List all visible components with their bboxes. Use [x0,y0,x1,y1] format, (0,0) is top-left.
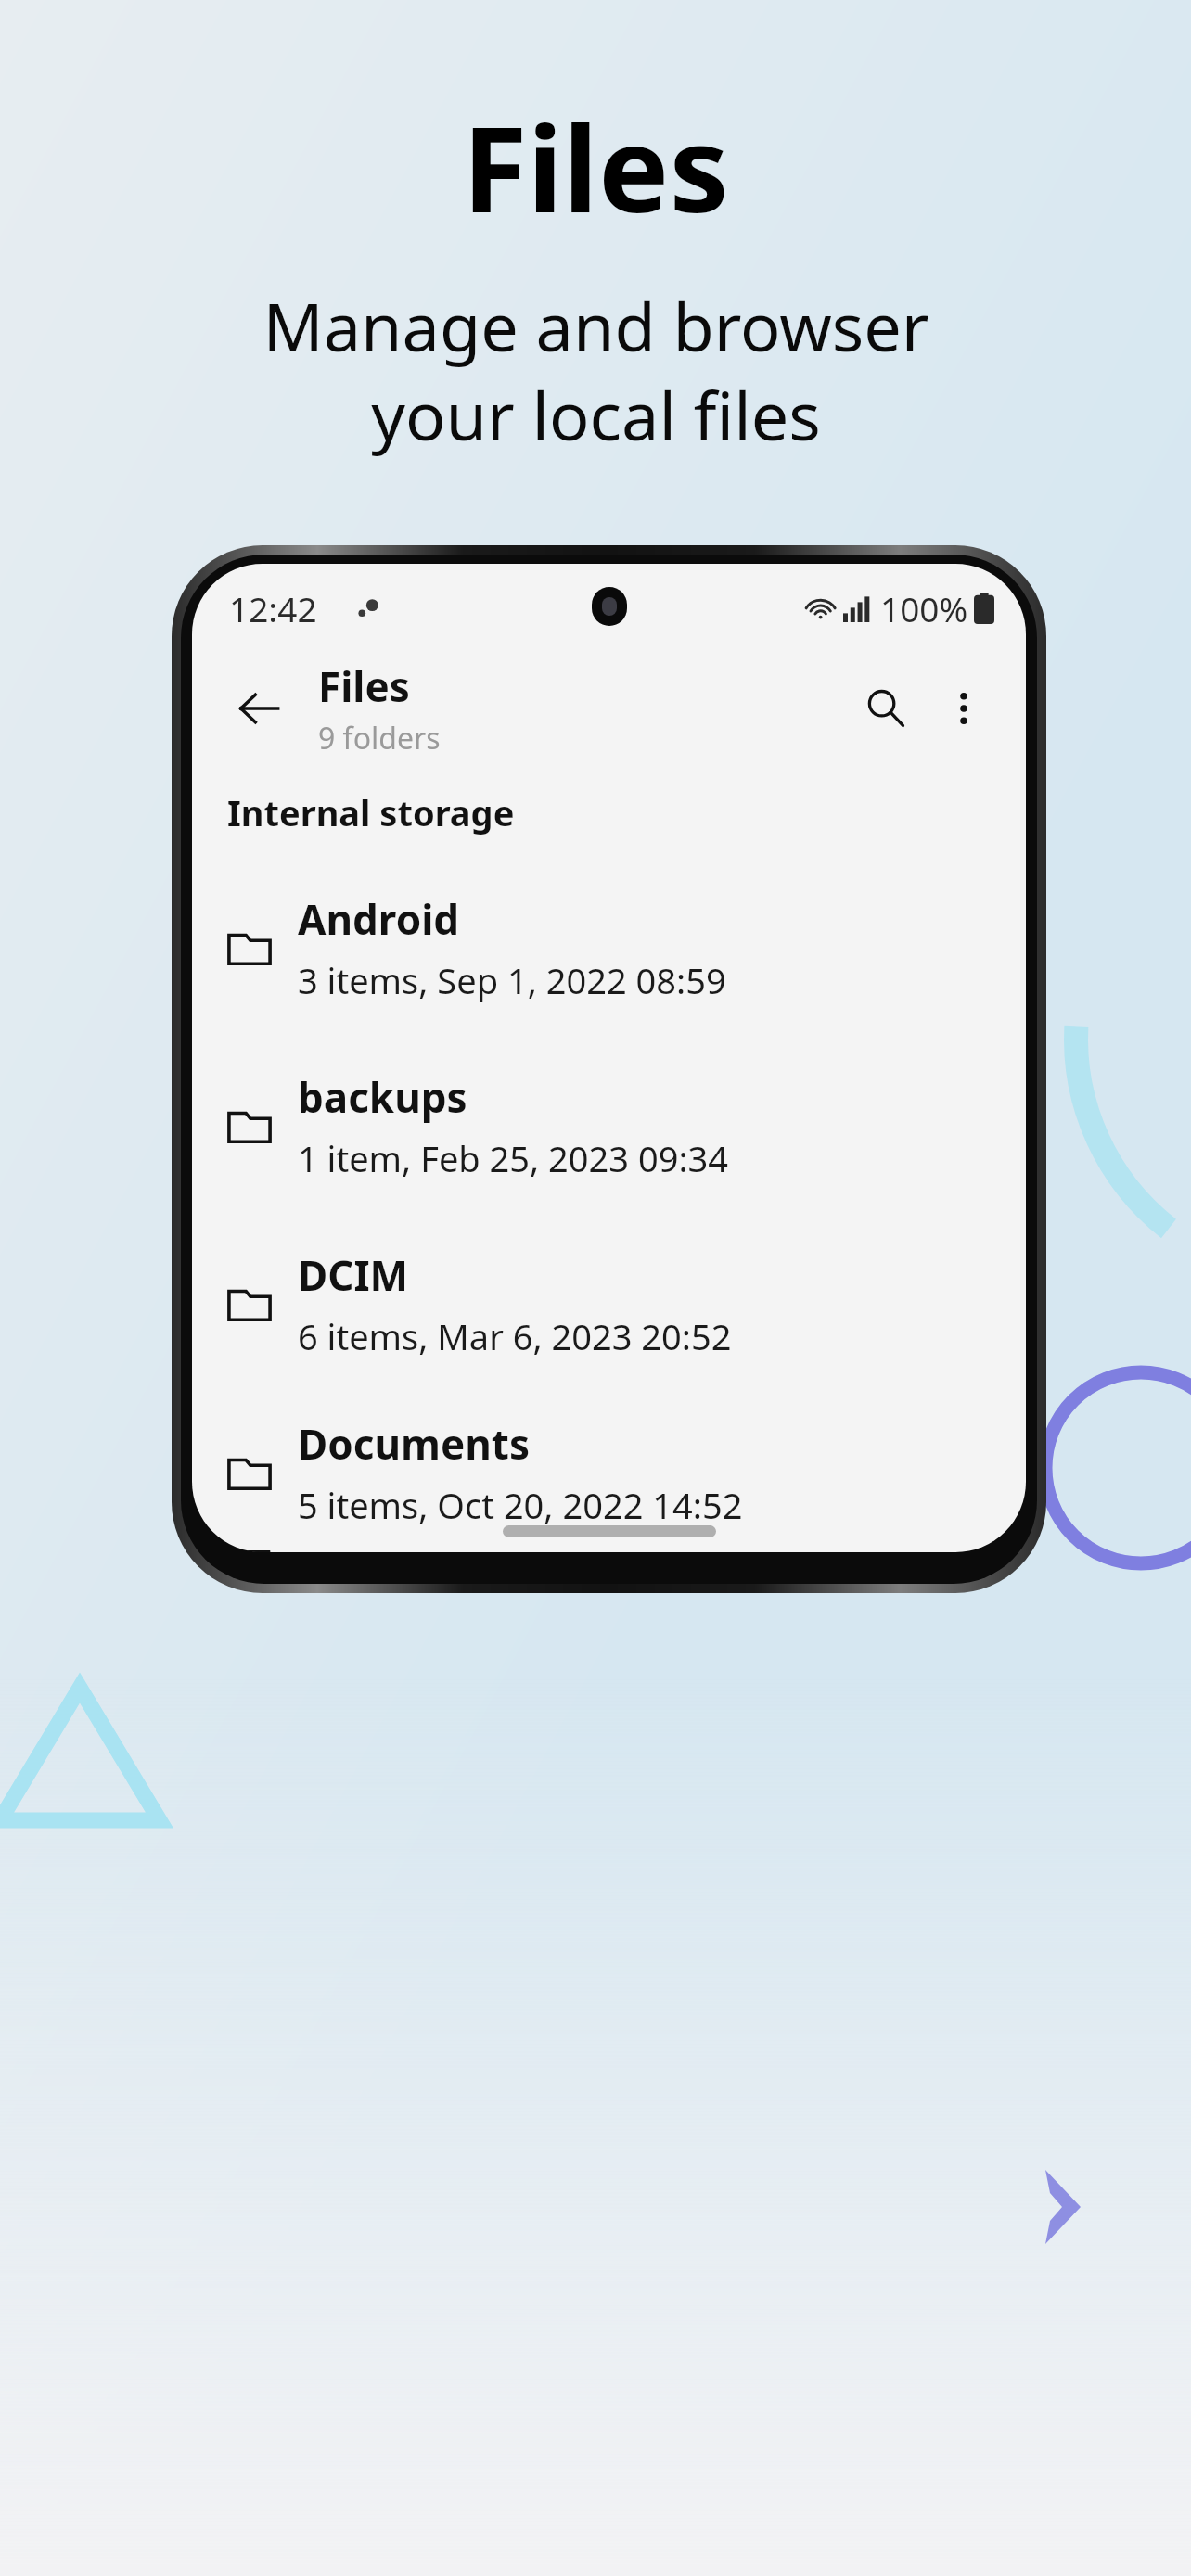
staticText: 12:42 [229,585,317,631]
staticText: DCIM [298,1247,409,1303]
staticText: 3 items, Sep 1, 2022 08:59 [298,956,726,1004]
button[interactable]: More options [926,670,1002,746]
staticText: Files [462,85,729,247]
button[interactable]: Search [846,669,926,748]
staticText: Files [318,658,410,714]
staticText: 100% [880,585,968,631]
staticText: 9 folders [318,718,441,759]
staticText: Internal storage [227,788,515,836]
button[interactable]: Back [220,670,298,747]
button[interactable]: DCIM [192,1215,1026,1393]
staticText: 1 item, Feb 25, 2023 09:34 [298,1134,729,1182]
staticText: Manage and browser your local files [263,280,929,460]
staticText: 5 items, Oct 20, 2022 14:52 [298,1481,743,1529]
button[interactable]: Android [192,859,1026,1037]
button[interactable]: backups [192,1037,1026,1215]
staticText: backups [298,1069,467,1125]
button[interactable]: Documents [192,1393,1026,1552]
staticText: Android [298,891,460,947]
staticText: 6 items, Mar 6, 2023 20:52 [298,1312,732,1360]
staticText: Documents [298,1416,530,1472]
